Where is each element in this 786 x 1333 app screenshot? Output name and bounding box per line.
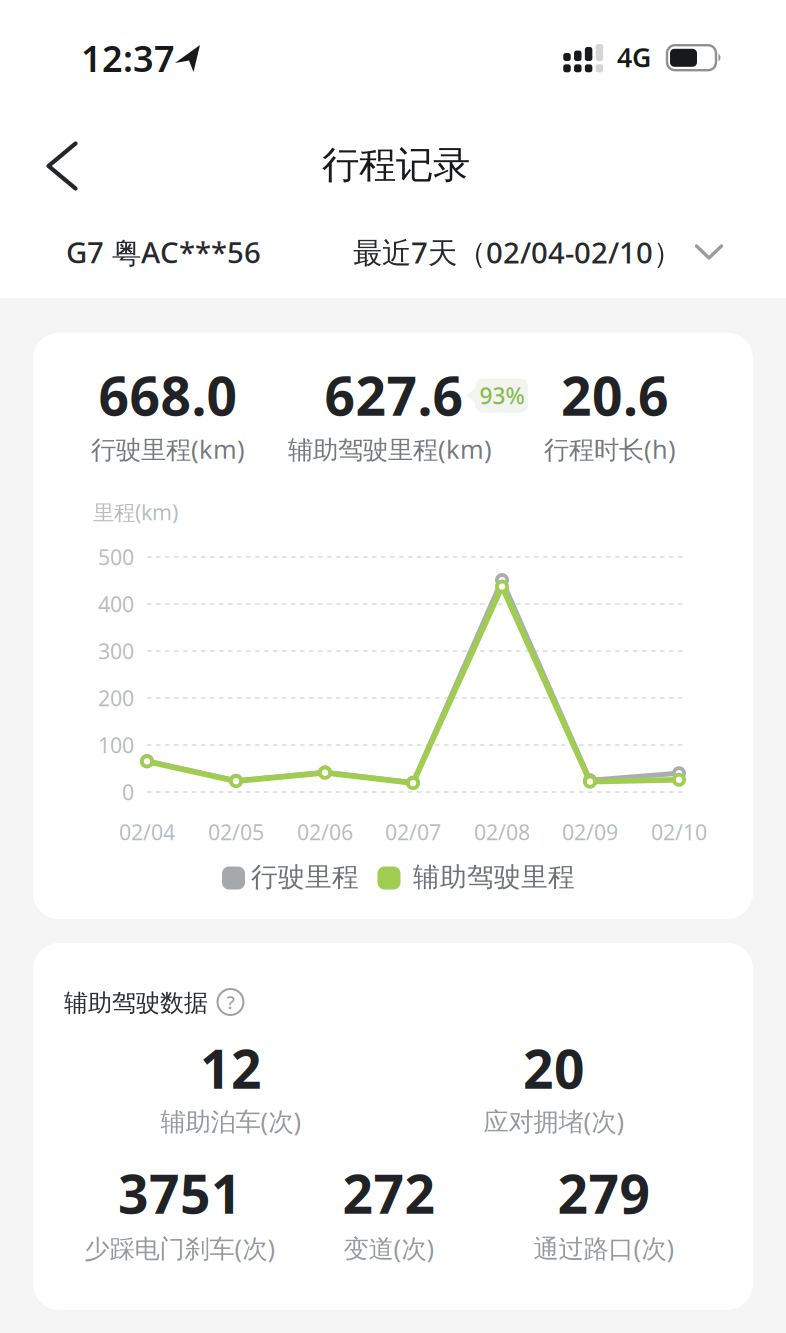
staticText: 行驶里程(km) (91, 432, 245, 466)
staticText: 行驶里程 (251, 861, 359, 893)
staticText: 行程时长(h) (544, 432, 676, 466)
staticText: 3751 (118, 1158, 242, 1228)
staticText: 应对拥堵(次) (483, 1104, 624, 1138)
staticText: 300 (98, 637, 134, 665)
staticText: 279 (557, 1158, 650, 1228)
staticText: 行程记录 (322, 142, 470, 188)
staticText: 里程(km) (93, 498, 178, 526)
staticText: 02/10 (651, 818, 707, 846)
staticText: 最近7天（02/04-02/10） (353, 232, 682, 271)
button[interactable]: Back (32, 135, 94, 197)
staticText: 02/05 (208, 818, 264, 846)
staticText: 辅助驾驶数据 (64, 988, 208, 1018)
staticText: 200 (98, 684, 134, 712)
staticText: 0 (122, 778, 134, 806)
staticText: 辅助驾驶里程(km) (288, 432, 492, 466)
staticText: 627.6 (324, 360, 463, 430)
staticText: ? (226, 990, 234, 1014)
staticText: 辅助泊车(次) (160, 1104, 301, 1138)
staticText: 辅助驾驶里程 (413, 861, 575, 893)
staticText: 668.0 (98, 360, 237, 430)
staticText: 02/07 (385, 818, 441, 846)
staticText: 400 (98, 590, 134, 618)
staticText: 02/08 (474, 818, 530, 846)
staticText: 少踩电门刹车(次) (84, 1231, 275, 1265)
staticText: 02/09 (562, 818, 618, 846)
button[interactable]: G7 粤AC***56 (66, 224, 466, 280)
staticText: 100 (98, 731, 134, 759)
button[interactable]: 最近7天（02/04-02/10） (353, 224, 723, 280)
staticText: 02/06 (297, 818, 353, 846)
staticText: 变道(次) (343, 1231, 434, 1265)
staticText: 4G (617, 39, 651, 75)
staticText: 12 (200, 1033, 262, 1103)
staticText: 02/04 (119, 818, 175, 846)
button[interactable]: 帮助 (214, 986, 246, 1018)
staticText: 272 (342, 1158, 435, 1228)
staticText: 20 (523, 1033, 585, 1103)
staticText: G7 粤AC***56 (66, 232, 261, 271)
staticText: 93% (479, 380, 524, 410)
staticText: 20.6 (561, 360, 669, 430)
staticText: 12:37 (81, 34, 175, 82)
staticText: 500 (98, 543, 134, 571)
staticText: 通过路口(次) (533, 1231, 674, 1265)
